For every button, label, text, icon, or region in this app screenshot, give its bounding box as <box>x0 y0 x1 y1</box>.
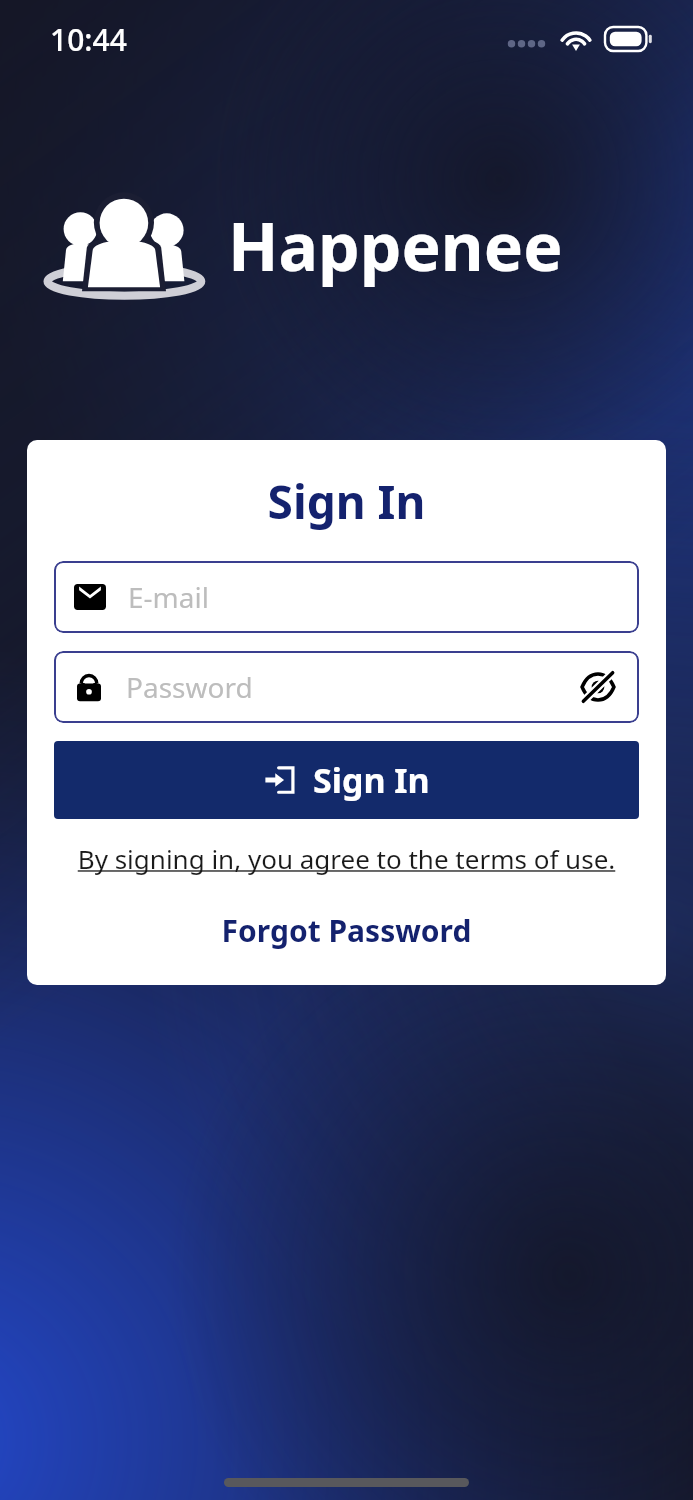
button[interactable]: Sign In <box>54 741 639 819</box>
staticText: By signing in, you agree to the terms of… <box>54 841 639 876</box>
staticText: E-mail <box>128 578 209 616</box>
staticText: 10:44 <box>50 19 127 60</box>
staticText: Sign In <box>54 470 639 533</box>
staticText: Happenee <box>228 200 563 290</box>
button[interactable]: E-mail <box>54 561 639 633</box>
staticText: Password <box>126 668 575 706</box>
button[interactable]: By signing in, you agree to the terms of… <box>54 837 639 880</box>
staticText: Sign In <box>313 757 430 803</box>
staticText: Forgot Password <box>54 910 639 951</box>
button[interactable]: Show password <box>575 664 621 710</box>
button[interactable]: Password <box>54 651 639 723</box>
button[interactable]: Forgot Password <box>54 906 639 955</box>
